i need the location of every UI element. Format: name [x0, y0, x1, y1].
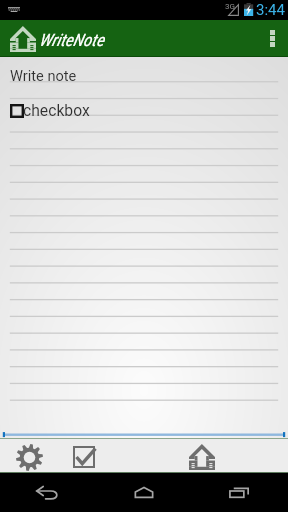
button[interactable]: Settings [15, 443, 43, 471]
staticText: WriteNote [39, 30, 104, 50]
staticText: 3G [225, 2, 235, 11]
button[interactable]: More options [256, 20, 288, 57]
button[interactable]: Checklist [70, 443, 98, 471]
staticText: Write note [10, 67, 77, 84]
button[interactable]: Home [188, 443, 216, 471]
button[interactable]: Recent apps [192, 473, 288, 512]
staticText: checkbox [23, 101, 90, 119]
button[interactable]: Home [96, 473, 192, 512]
staticText: 3:44 [256, 1, 285, 19]
button[interactable]: Back [0, 473, 96, 512]
